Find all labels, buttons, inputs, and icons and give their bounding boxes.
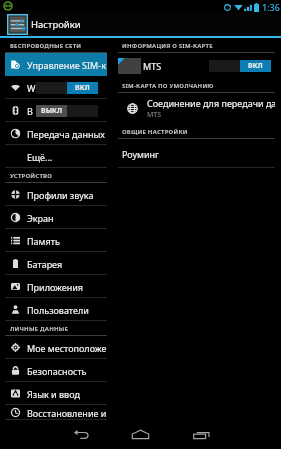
button[interactable]: ВЫКЛ xyxy=(36,105,98,117)
staticText: Пользователи xyxy=(27,304,89,316)
button[interactable]: Back xyxy=(51,420,111,449)
staticText: Профили звука xyxy=(27,189,94,201)
staticText: Настройки xyxy=(31,18,81,31)
staticText: УСТРОЙСТВО xyxy=(10,172,53,180)
staticText: Управление SIM-к xyxy=(27,59,106,71)
staticText: Передача данных xyxy=(27,128,105,140)
button[interactable]: Соединение для передачи да xyxy=(118,93,275,124)
button[interactable]: Home xyxy=(110,420,170,449)
button[interactable]: W xyxy=(5,76,107,99)
button[interactable]: Управление SIM-к xyxy=(5,53,107,76)
button[interactable]: Пользователи xyxy=(5,298,107,321)
button[interactable]: ВКЛ xyxy=(209,60,271,72)
button[interactable]: MTS xyxy=(118,53,275,78)
button[interactable]: Язык и ввод xyxy=(5,382,107,405)
button[interactable]: Передача данных xyxy=(5,122,107,145)
staticText: 1:36 xyxy=(262,1,280,13)
button[interactable]: ВКЛ xyxy=(36,82,98,94)
button[interactable]: Восстановление и xyxy=(5,405,107,420)
button[interactable]: Безопасность xyxy=(5,359,107,382)
staticText: ИНФОРМАЦИЯ О SIM-КАРТЕ xyxy=(122,42,213,50)
staticText: Мое местоположе xyxy=(27,342,107,354)
button[interactable]: Батарея xyxy=(5,252,107,275)
button[interactable]: Профили звука xyxy=(5,183,107,206)
staticText: Ещё... xyxy=(27,151,53,163)
staticText: B xyxy=(27,105,33,117)
staticText: ВКЛ xyxy=(75,83,90,93)
staticText: MTS xyxy=(147,110,162,120)
button[interactable]: Мое местоположе xyxy=(5,336,107,359)
staticText: БЕСПРОВОДНЫЕ СЕТИ xyxy=(10,42,82,50)
staticText: ВКЛ xyxy=(248,61,263,71)
button[interactable]: Настройки xyxy=(0,13,281,36)
staticText: Восстановление и xyxy=(27,407,107,419)
button[interactable]: Память xyxy=(5,229,107,252)
button[interactable]: B xyxy=(5,99,107,122)
staticText: MTS xyxy=(143,60,162,72)
staticText: Язык и ввод xyxy=(27,388,80,400)
staticText: Роуминг xyxy=(122,148,159,160)
staticText: SIM-КАРТА ПО УМОЛЧАНИЮ xyxy=(122,82,214,90)
staticText: ВЫКЛ xyxy=(41,106,63,116)
staticText: W xyxy=(27,82,36,94)
staticText: Соединение для передачи да xyxy=(147,97,275,109)
button[interactable]: Приложения xyxy=(5,275,107,298)
staticText: ЛИЧНЫЕ ДАННЫЕ xyxy=(10,325,69,333)
button[interactable]: Recent apps xyxy=(171,420,231,449)
staticText: ОБЩИЕ НАСТРОЙКИ xyxy=(122,128,188,136)
staticText: Память xyxy=(27,235,60,247)
staticText: Приложения xyxy=(27,281,84,293)
staticText: Батарея xyxy=(27,258,63,270)
staticText: Экран xyxy=(27,212,54,224)
button[interactable]: Ещё... xyxy=(5,145,107,168)
button[interactable]: Экран xyxy=(5,206,107,229)
staticText: Безопасность xyxy=(27,365,87,377)
button[interactable]: Роуминг xyxy=(118,139,275,168)
